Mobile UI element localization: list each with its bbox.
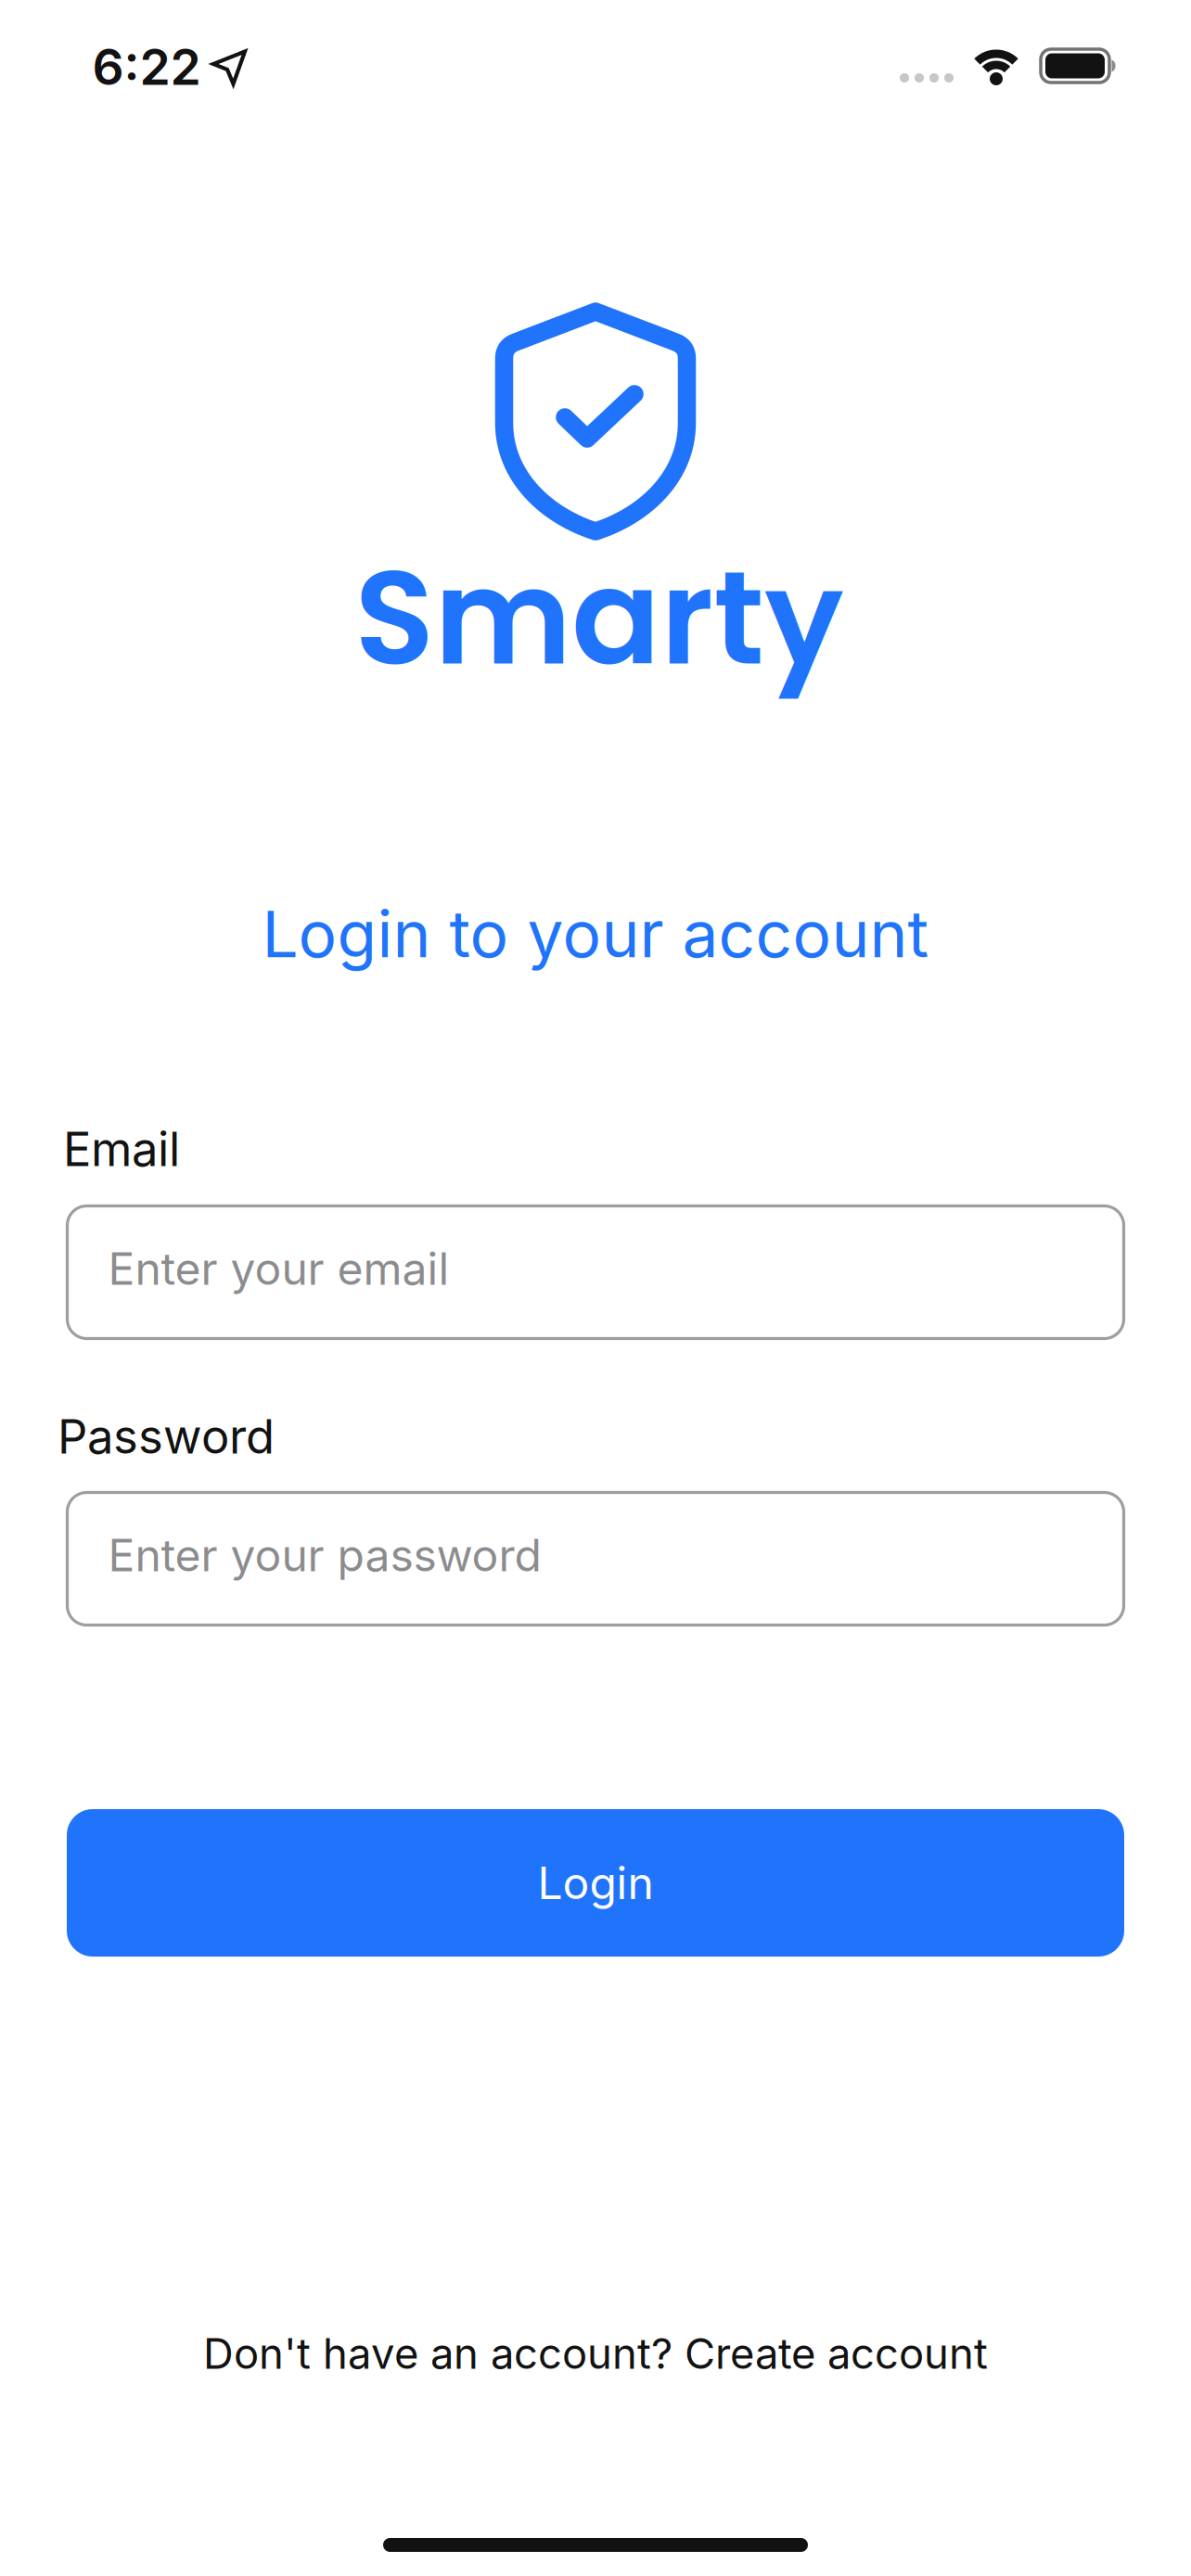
- button[interactable]: Login: [67, 1809, 1124, 1957]
- staticText: 6:22: [92, 37, 201, 97]
- staticText: Password: [58, 1408, 275, 1465]
- button[interactable]: Enter your password: [67, 1492, 1124, 1625]
- button[interactable]: Don't have an account? Create account: [203, 2328, 988, 2379]
- staticText: Enter your password: [108, 1528, 541, 1582]
- staticText: Don't have an account? Create account: [203, 2328, 988, 2379]
- staticText: Smarty: [354, 526, 844, 709]
- staticText: Login to your account: [262, 895, 929, 973]
- staticText: Login: [538, 1856, 653, 1910]
- staticText: Email: [63, 1120, 180, 1177]
- button[interactable]: Enter your email: [67, 1206, 1124, 1339]
- staticText: Enter your email: [108, 1242, 449, 1296]
